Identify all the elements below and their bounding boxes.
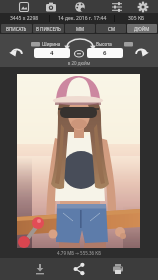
- button[interactable]: 6: [87, 48, 123, 58]
- button[interactable]: [72, 49, 86, 59]
- button[interactable]: [71, 0, 89, 13]
- button[interactable]: [64, 37, 96, 50]
- button[interactable]: [66, 258, 92, 280]
- staticText: ММ: [76, 26, 85, 32]
- staticText: СМ: [108, 26, 115, 32]
- staticText: ВПИСАТЬ: [6, 26, 27, 32]
- button[interactable]: СМ: [96, 24, 126, 33]
- staticText: 6: [103, 49, 107, 57]
- button[interactable]: [7, 46, 23, 60]
- button[interactable]: [42, 0, 60, 13]
- button[interactable]: ММ: [65, 24, 95, 33]
- button[interactable]: [108, 0, 126, 13]
- button[interactable]: ВПИСАТЬ: [1, 24, 32, 33]
- button[interactable]: 3445 x 2298: [0, 13, 49, 23]
- button[interactable]: 14 дек. 2016 г. 17:44: [50, 13, 114, 23]
- button[interactable]: ДЮЙМ: [127, 24, 157, 33]
- button[interactable]: [135, 46, 151, 60]
- staticText: 14 дек. 2016 г. 17:44: [58, 15, 107, 22]
- button[interactable]: [134, 0, 152, 13]
- button[interactable]: В ПИКСЕЛЬ: [33, 24, 64, 33]
- button[interactable]: 4: [34, 48, 70, 58]
- staticText: 4.79 МБ → 555.36 КБ: [0, 250, 158, 256]
- staticText: ДЮЙМ: [134, 26, 150, 32]
- staticText: в 20 дюйм: [0, 60, 158, 66]
- button[interactable]: [27, 258, 53, 280]
- staticText: 4: [50, 49, 54, 57]
- staticText: 305 КБ: [128, 15, 145, 22]
- button[interactable]: [105, 258, 131, 280]
- button[interactable]: 305 КБ: [115, 13, 158, 23]
- staticText: 3445 x 2298: [10, 15, 39, 22]
- button[interactable]: [15, 0, 33, 13]
- staticText: Ширина: [42, 41, 61, 47]
- staticText: Высота: [96, 41, 112, 47]
- staticText: В ПИКСЕЛЬ: [36, 26, 61, 32]
